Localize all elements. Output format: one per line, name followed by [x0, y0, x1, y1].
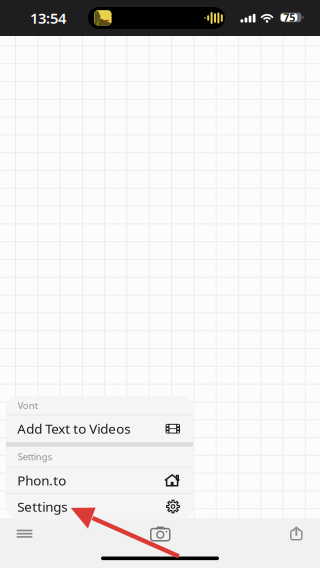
button[interactable]: Settings — [6, 494, 193, 519]
button[interactable]: Page settings — [0, 0, 46, 36]
staticText: Settings — [18, 450, 52, 463]
staticText: Add Text to Videos — [17, 420, 130, 437]
staticText: 75 — [283, 10, 295, 24]
button[interactable]: Add Text to Videos — [6, 415, 193, 442]
staticText: 13:54 — [30, 8, 66, 28]
button[interactable]: Share — [0, 0, 46, 36]
button[interactable]: Phon.to — [6, 467, 193, 493]
staticText: Settings — [17, 498, 67, 515]
button[interactable]: Camera — [0, 0, 46, 36]
staticText: Vont — [18, 399, 38, 412]
staticText: Phon.to — [17, 471, 66, 489]
